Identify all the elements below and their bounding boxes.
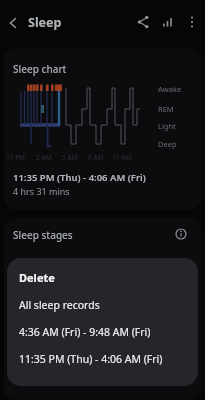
staticText: 5 AM: [62, 153, 78, 162]
staticText: Deep: [158, 139, 177, 149]
staticText: REM: [158, 104, 174, 114]
button[interactable]: Delete: [7, 264, 198, 291]
staticText: Sleep: [28, 14, 62, 31]
staticText: 11:35 PM (Thu) - 4:06 AM (Fri): [19, 352, 163, 366]
staticText: Awake: [158, 84, 182, 94]
button[interactable]: [2, 12, 24, 34]
staticText: Sleep stages: [13, 228, 73, 242]
staticText: Delete: [19, 270, 55, 285]
button[interactable]: [175, 228, 187, 240]
staticText: 11:35 PM (Thu) - 4:06 AM (Fri): [13, 171, 146, 184]
button[interactable]: [182, 12, 202, 32]
button[interactable]: 11:35 PM (Thu) - 4:06 AM (Fri): [7, 345, 198, 372]
staticText: 4 hrs 31 mins: [13, 185, 70, 197]
button[interactable]: 4:36 AM (Fri) - 9:48 AM (Fri): [7, 318, 198, 345]
staticText: 11 AM: [112, 153, 132, 162]
staticText: All sleep records: [19, 298, 100, 312]
button[interactable]: All sleep records: [7, 291, 198, 318]
button[interactable]: [158, 12, 178, 32]
button[interactable]: [133, 12, 153, 32]
staticText: 8 AM: [88, 153, 104, 162]
staticText: Light: [158, 121, 176, 131]
staticText: 4:36 AM (Fri) - 9:48 AM (Fri): [19, 325, 151, 339]
staticText: 2 AM: [36, 153, 52, 162]
staticText: 11 PM: [6, 153, 25, 162]
staticText: Sleep chart: [13, 62, 67, 76]
